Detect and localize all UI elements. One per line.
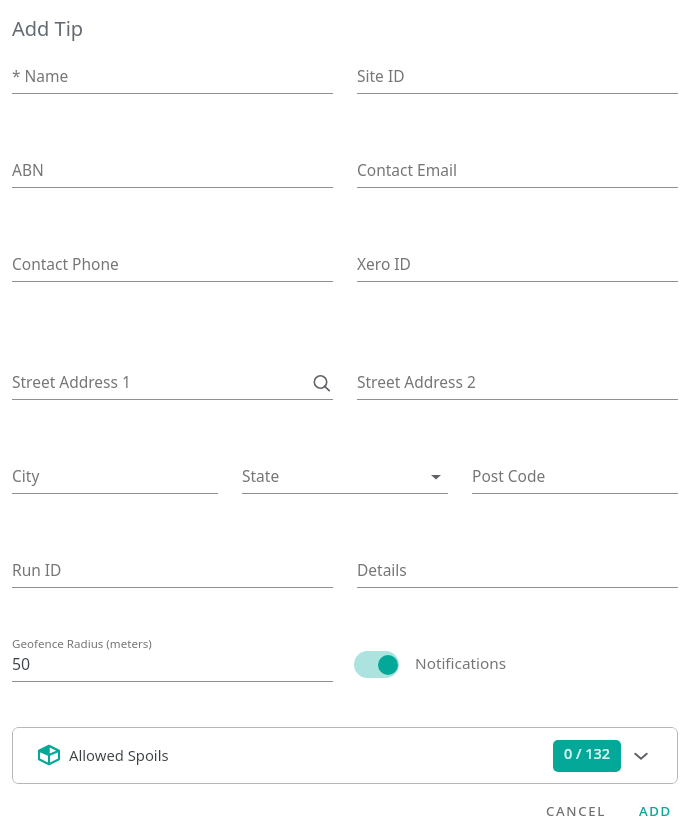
button[interactable]: CANCEL [538,796,614,826]
button[interactable]: Details [357,553,678,588]
button[interactable]: Site ID [357,59,678,94]
staticText: Street Address 2 [357,371,476,392]
button[interactable]: Contact Phone [12,247,333,282]
staticText: Contact Email [357,159,457,180]
staticText: Run ID [12,559,62,580]
staticText: * Name [12,65,69,86]
button[interactable]: Contact Email [357,153,678,188]
button[interactable]: Post Code [472,459,678,494]
staticText: Geofence Radius (meters) [12,636,152,652]
button[interactable]: State [242,459,448,494]
button[interactable]: Street Address 2 [357,365,678,400]
staticText: Details [357,559,407,580]
button[interactable]: Expand allowed spoils [630,745,652,767]
staticText: State [242,465,280,486]
button[interactable]: ABN [12,153,333,188]
staticText: City [12,465,40,486]
button[interactable]: Geofence Radius (meters) [12,635,333,681]
button[interactable]: Xero ID [357,247,678,282]
button[interactable]: Run ID [12,553,333,588]
staticText: Allowed Spoils [69,745,169,765]
staticText: 0 / 132 [564,744,610,764]
button[interactable]: Add Tip [12,15,84,42]
button[interactable]: Select state [425,469,447,491]
staticText: Add Tip [12,15,84,42]
staticText: 50 [12,653,31,675]
staticText: ADD [639,802,672,820]
staticText: Site ID [357,65,405,86]
button[interactable]: 0 / 132 [553,740,621,772]
staticText: Contact Phone [12,253,119,274]
staticText: Post Code [472,465,546,486]
button[interactable]: Notifications [354,643,506,685]
button[interactable]: City [12,459,218,494]
button[interactable]: Search address [311,373,335,397]
button[interactable]: Street Address 1 [12,365,333,400]
button[interactable]: Allowed Spoils [12,727,678,784]
staticText: CANCEL [546,802,606,820]
staticText: Street Address 1 [12,371,131,392]
staticText: Xero ID [357,253,411,274]
button[interactable]: ADD [631,796,680,826]
staticText: ABN [12,159,44,180]
staticText: Notifications [415,653,506,674]
button[interactable]: * Name [12,59,333,94]
